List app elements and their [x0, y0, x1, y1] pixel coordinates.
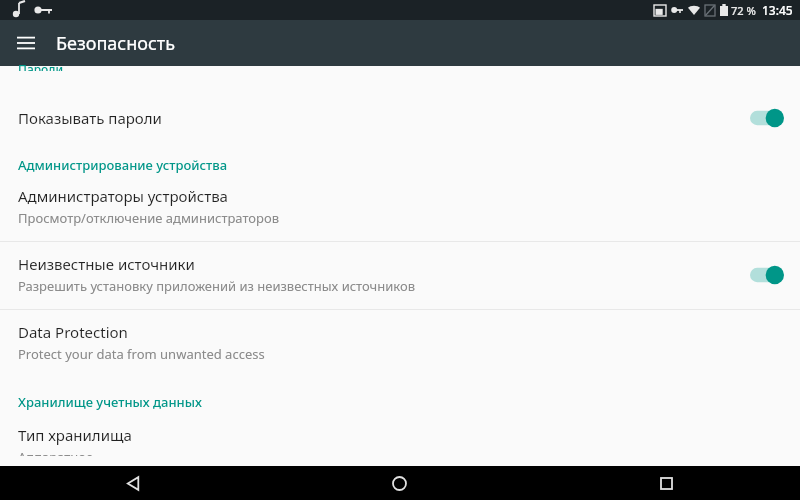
staticText: Protect your data from unwanted access — [18, 345, 265, 363]
button[interactable]: Back — [0, 466, 266, 500]
button[interactable] — [748, 108, 784, 128]
staticText: Показывать пароли — [18, 108, 162, 128]
button[interactable]: Home — [266, 466, 533, 500]
staticText: Пароли — [18, 61, 64, 71]
staticText: Просмотр/отключение администраторов — [18, 209, 280, 227]
staticText: Data Protection — [18, 322, 128, 342]
button[interactable]: Recent apps — [533, 466, 800, 500]
button[interactable]: Неизвестные источники — [0, 242, 800, 305]
button[interactable]: Администраторы устройства — [0, 174, 800, 237]
staticText: Тип хранилища — [18, 425, 132, 445]
staticText: Безопасность — [56, 31, 176, 56]
button[interactable]: Тип хранилища — [0, 411, 800, 466]
staticText: 13:45 — [762, 2, 793, 18]
staticText: Разрешить установку приложений из неизве… — [18, 277, 416, 295]
button[interactable] — [748, 265, 784, 285]
staticText: Неизвестные источники — [18, 254, 195, 274]
button[interactable]: Показывать пароли — [0, 76, 800, 138]
staticText: Аппаратное — [18, 448, 94, 456]
staticText: Администрирование устройства — [18, 156, 228, 174]
staticText: Администраторы устройства — [18, 186, 228, 206]
button[interactable]: Open navigation menu — [8, 25, 44, 61]
staticText: Хранилище учетных данных — [18, 393, 202, 411]
button[interactable]: Data Protection — [0, 310, 800, 373]
staticText: 72 % — [731, 3, 756, 18]
